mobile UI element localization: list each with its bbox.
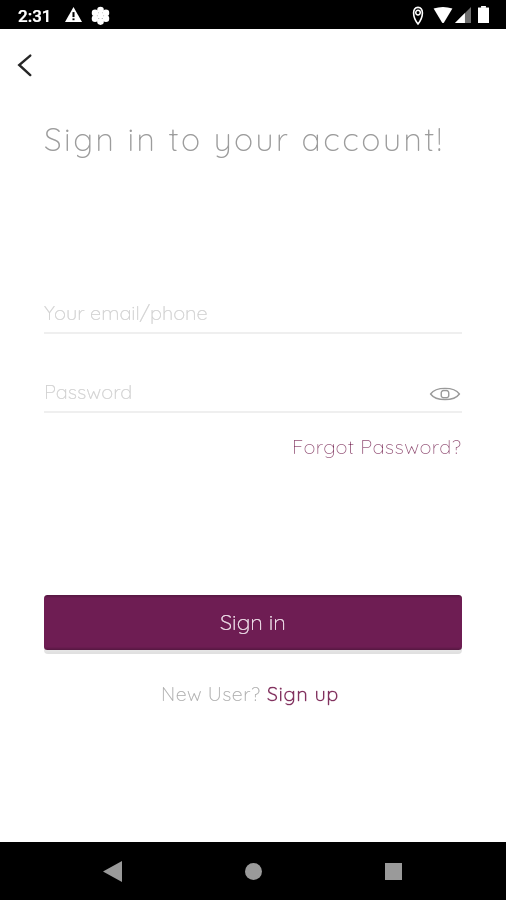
- staticText: 2:31: [18, 6, 52, 26]
- button[interactable]: Home: [229, 847, 277, 895]
- button[interactable]: Sign in: [44, 595, 462, 650]
- staticText: Sign in: [220, 608, 286, 636]
- button[interactable]: Back: [88, 847, 136, 895]
- button[interactable]: Sign up: [267, 681, 340, 705]
- button[interactable]: Show password: [425, 374, 465, 414]
- button[interactable]: Recent apps: [369, 847, 417, 895]
- staticText: Password: [44, 379, 133, 404]
- staticText: Your email/phone: [44, 300, 208, 325]
- staticText: Sign in to your account!: [44, 119, 445, 159]
- button[interactable]: Forgot Password?: [292, 430, 462, 463]
- staticText: Forgot Password?: [292, 434, 462, 459]
- staticText: New User?: [161, 681, 267, 705]
- staticText: Sign up: [267, 681, 340, 705]
- button[interactable]: Back: [1, 41, 49, 89]
